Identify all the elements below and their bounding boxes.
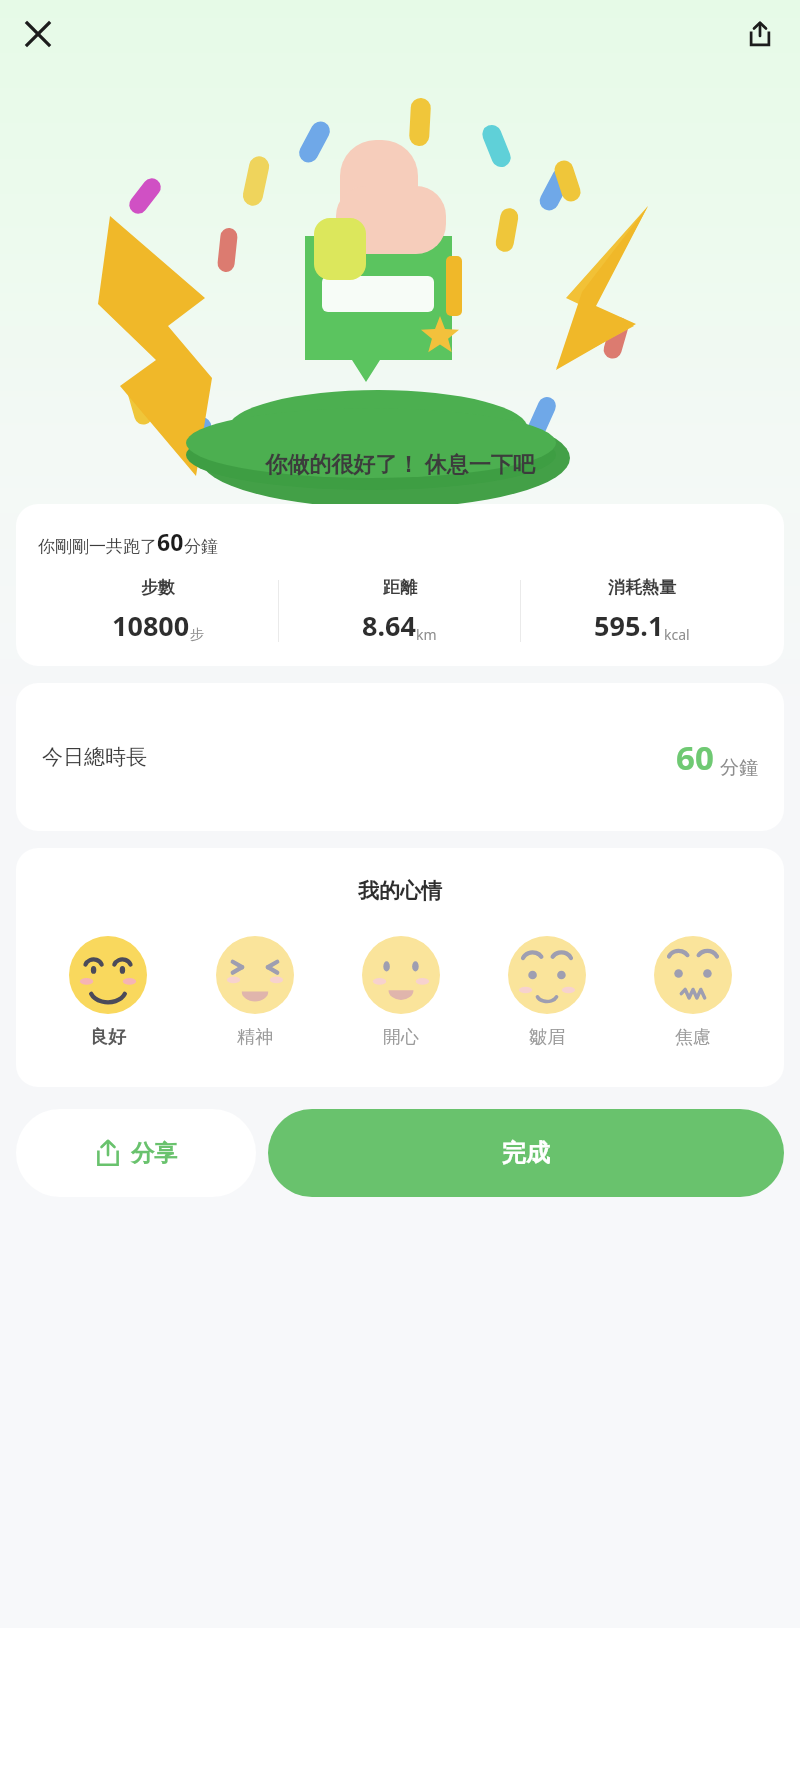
staticText: 595.1	[594, 607, 664, 644]
staticText: 分鐘	[184, 536, 218, 557]
button[interactable]: 良好	[34, 932, 181, 1053]
staticText: 分鐘	[720, 756, 758, 780]
staticText: 開心	[383, 1026, 419, 1049]
button[interactable]: 焦慮	[620, 932, 766, 1053]
staticText: 消耗熱量	[608, 577, 676, 598]
staticText: 10800	[112, 607, 190, 644]
button[interactable]: 分享	[16, 1109, 256, 1197]
staticText: 步	[190, 626, 204, 644]
staticText: 距離	[383, 577, 417, 598]
staticText: 步數	[141, 577, 175, 598]
staticText: 皺眉	[529, 1026, 565, 1049]
button[interactable]: Close	[14, 10, 62, 58]
staticText: 你剛剛一共跑了	[38, 536, 157, 557]
staticText: 良好	[90, 1026, 126, 1049]
button[interactable]: 開心	[328, 932, 474, 1053]
button[interactable]: Share	[736, 10, 784, 58]
button[interactable]: 你剛剛一共跑了	[16, 504, 784, 666]
button[interactable]: 精神	[181, 932, 328, 1053]
staticText: 60	[157, 526, 184, 557]
staticText: 你做的很好了！ 休息一下吧	[0, 448, 800, 478]
staticText: 我的心情	[358, 878, 442, 904]
staticText: 焦慮	[675, 1026, 711, 1049]
staticText: 8.64	[362, 607, 416, 644]
staticText: 今日總時長	[42, 744, 147, 770]
button[interactable]: 皺眉	[474, 932, 620, 1053]
button[interactable]: 完成	[268, 1109, 784, 1197]
staticText: 分享	[131, 1139, 177, 1168]
staticText: 完成	[502, 1138, 550, 1168]
button[interactable]: 今日總時長	[16, 683, 784, 831]
staticText: kcal	[664, 625, 690, 644]
staticText: 精神	[237, 1026, 273, 1049]
staticText: km	[416, 625, 437, 644]
staticText: 60	[676, 735, 714, 780]
